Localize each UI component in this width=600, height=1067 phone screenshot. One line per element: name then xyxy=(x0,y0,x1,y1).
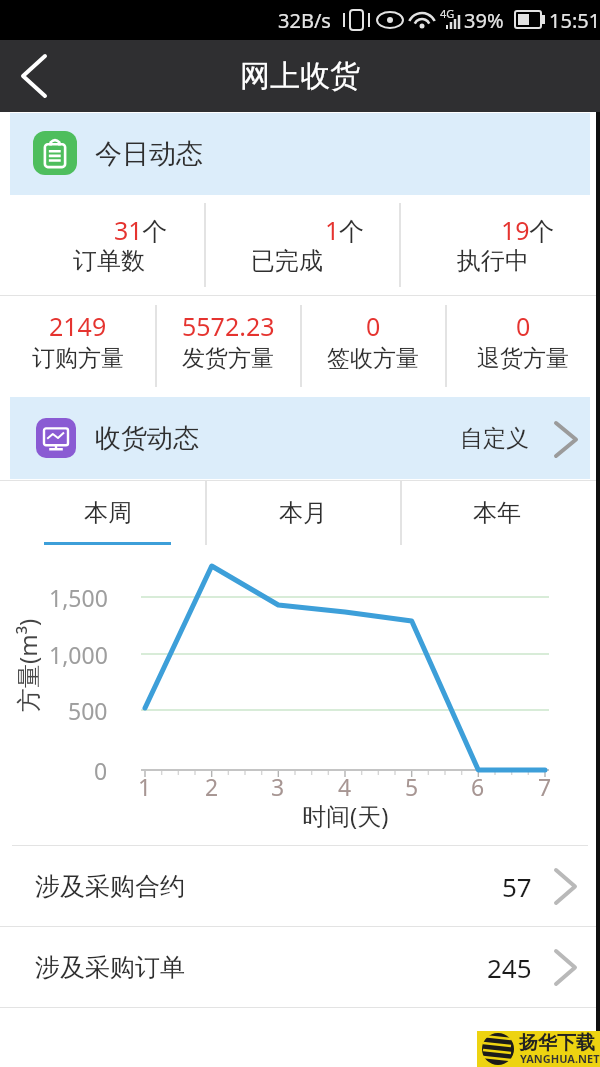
staticText: 自定义 xyxy=(460,424,529,453)
staticText: 时间(天) xyxy=(302,799,389,832)
staticText: 1 xyxy=(138,771,152,802)
staticText: 31个 xyxy=(114,213,168,247)
staticText: 本月 xyxy=(279,498,327,528)
staticText: 5 xyxy=(405,771,419,802)
button[interactable] xyxy=(400,480,600,545)
staticText: 500 xyxy=(68,695,108,725)
staticText: 订单数 xyxy=(73,246,145,276)
button[interactable] xyxy=(399,195,600,295)
staticText: 19个 xyxy=(501,213,555,247)
button[interactable] xyxy=(204,195,399,295)
staticText: 2 xyxy=(205,771,219,802)
staticText: 本周 xyxy=(84,498,132,528)
staticText: 已完成 xyxy=(251,246,323,276)
staticText: 2149 xyxy=(49,309,107,343)
staticText: 4 xyxy=(338,771,352,802)
staticText: 本年 xyxy=(473,498,521,528)
staticText: 4G xyxy=(440,6,455,21)
staticText: 扬华下载 xyxy=(519,1031,595,1055)
staticText: 退货方量 xyxy=(477,344,569,373)
button[interactable]: 涉及采购合约 xyxy=(0,846,600,926)
staticText: 网上收货 xyxy=(240,57,360,95)
staticText: 1,000 xyxy=(49,639,108,669)
staticText: 发货方量 xyxy=(182,344,274,373)
staticText: 收货动态 xyxy=(95,422,199,455)
staticText: 39% xyxy=(464,7,504,34)
staticText: 签收方量 xyxy=(327,344,419,373)
staticText: YANGHUA.NET xyxy=(520,1051,600,1066)
button[interactable] xyxy=(0,195,204,295)
staticText: 执行中 xyxy=(457,246,529,276)
button[interactable] xyxy=(205,480,400,545)
staticText: 6 xyxy=(471,771,485,802)
staticText: 方量(m³) xyxy=(11,618,43,712)
staticText: 涉及采购合约 xyxy=(35,871,185,902)
staticText: 57 xyxy=(502,869,532,904)
staticText: 订购方量 xyxy=(32,344,124,373)
staticText: 1,500 xyxy=(49,582,108,612)
staticText: 7 xyxy=(538,771,552,802)
button[interactable] xyxy=(0,480,205,545)
staticText: 1个 xyxy=(325,213,365,247)
button[interactable] xyxy=(8,50,60,102)
staticText: 涉及采购订单 xyxy=(35,952,185,983)
button[interactable]: 收货动态 xyxy=(10,397,590,479)
staticText: 245 xyxy=(487,950,532,985)
button[interactable]: 涉及采购订单 xyxy=(0,927,600,1007)
staticText: 0 xyxy=(94,755,108,785)
staticText: 0 xyxy=(366,309,381,343)
staticText: 15:51 xyxy=(549,7,600,34)
staticText: 0 xyxy=(516,309,531,343)
staticText: 今日动态 xyxy=(95,137,203,171)
staticText: 5572.23 xyxy=(182,309,275,343)
staticText: 3 xyxy=(271,771,285,802)
staticText: 32B/s xyxy=(278,7,331,34)
